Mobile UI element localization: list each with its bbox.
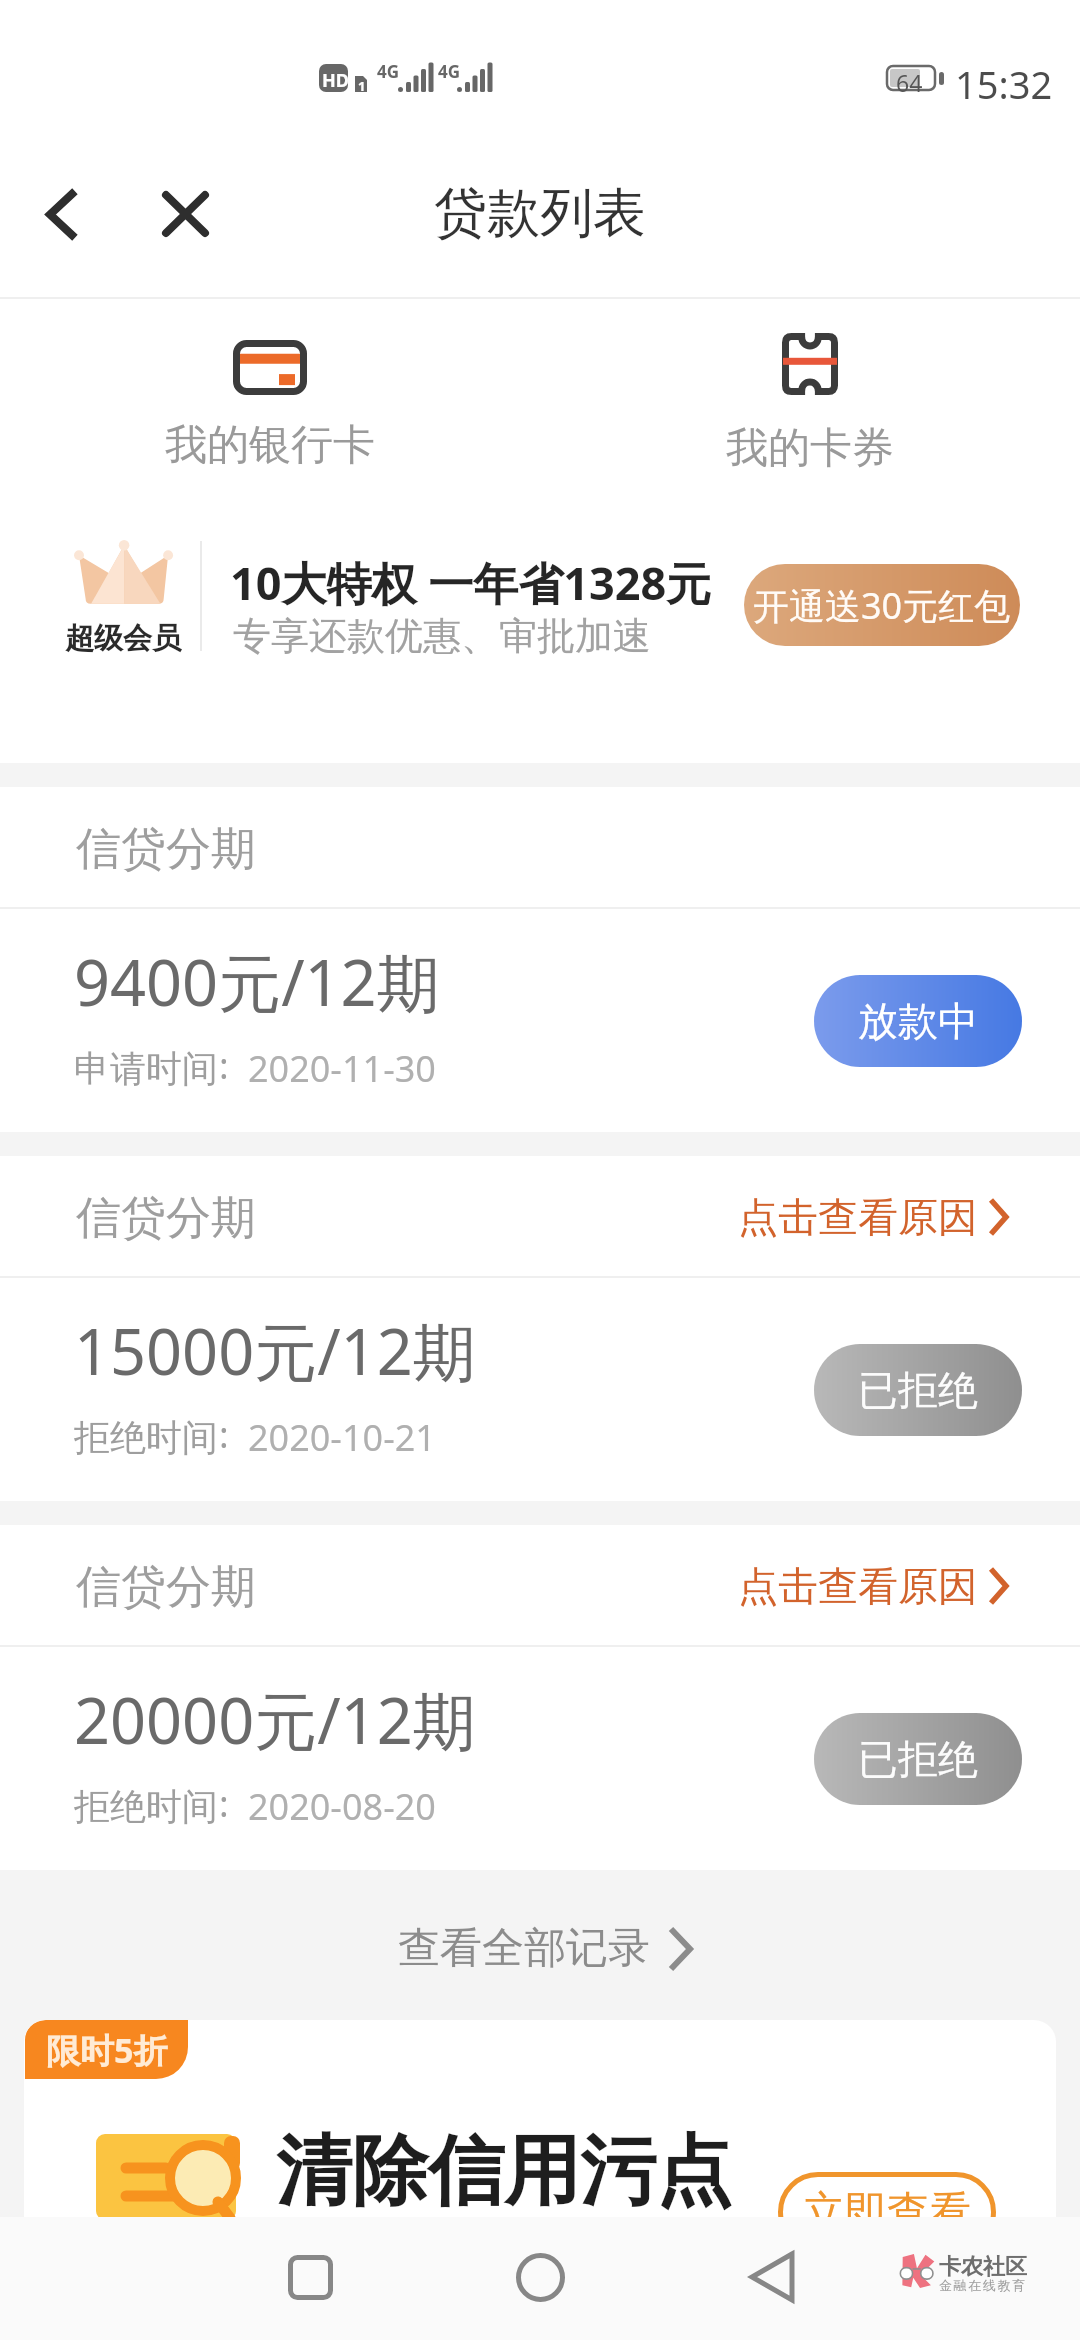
staticText: 我的银行卡 — [165, 419, 375, 472]
staticText: 超级会员 — [65, 620, 181, 657]
staticText: 15000元/12期 — [74, 1308, 476, 1394]
button[interactable]: 20000元/12期 — [0, 1647, 1080, 1870]
staticText: 2020-08-20 — [248, 1782, 436, 1831]
button[interactable]: 15000元/12期 — [0, 1278, 1080, 1501]
staticText: 拒绝时间 — [74, 1784, 218, 1829]
staticText: 2020-10-21 — [248, 1413, 436, 1462]
staticText: 点击查看原因 — [738, 1561, 978, 1611]
staticText: 信贷分期 — [76, 821, 256, 878]
staticText: 贷款列表 — [434, 180, 646, 247]
staticText: 专享还款优惠、审批加速 — [233, 612, 651, 660]
button[interactable]: 主页 — [480, 2230, 600, 2324]
button[interactable]: 返回 — [11, 164, 111, 264]
button[interactable]: 已拒绝 — [814, 1713, 1022, 1805]
staticText: 清除信用污点 — [276, 2124, 732, 2220]
button[interactable]: 信贷分期 — [0, 1525, 1080, 1645]
button[interactable]: 开通送30元红包 — [744, 564, 1020, 646]
button[interactable]: 放款中 — [814, 975, 1022, 1067]
button[interactable]: 关闭 — [135, 164, 235, 264]
staticText: 9400元/12期 — [74, 939, 440, 1025]
staticText: 10大特权 一年省1328元 — [230, 552, 712, 613]
staticText: 拒绝时间 — [74, 1415, 218, 1460]
staticText: 限时5折 — [46, 2027, 168, 2073]
staticText: : — [219, 1779, 229, 1828]
button[interactable]: 返回 — [712, 2230, 832, 2324]
button[interactable]: 超级会员 — [0, 499, 1080, 763]
staticText: 查看全部记录 — [398, 1922, 650, 1975]
staticText: 信贷分期 — [76, 1559, 256, 1616]
staticText: 已拒绝 — [858, 1734, 978, 1784]
staticText: 申请时间 — [74, 1046, 218, 1091]
staticText: 64 — [896, 67, 923, 98]
staticText: 开通送30元红包 — [753, 581, 1011, 630]
button[interactable]: 信贷分期 — [0, 1156, 1080, 1276]
button[interactable]: 信贷分期 — [0, 787, 1080, 907]
button[interactable]: 我的银行卡 — [0, 299, 540, 499]
staticText: 15:32 — [955, 58, 1053, 110]
staticText: 我的卡券 — [726, 422, 894, 475]
staticText: 放款中 — [858, 996, 978, 1046]
button[interactable]: 9400元/12期 — [0, 909, 1080, 1132]
staticText: 2020-11-30 — [248, 1044, 436, 1093]
staticText: 1 — [358, 77, 366, 95]
staticText: 4G — [377, 60, 400, 83]
staticText: : — [219, 1410, 229, 1459]
staticText: 立即查看 — [803, 2186, 971, 2220]
button[interactable]: 我的卡券 — [540, 299, 1080, 499]
staticText: 金融在线教育 — [939, 2277, 1027, 2293]
staticText: 已拒绝 — [858, 1365, 978, 1415]
staticText: 4G — [438, 60, 461, 83]
button[interactable]: 查看全部记录 — [6, 1873, 1080, 2023]
staticText: : — [219, 1041, 229, 1090]
button[interactable]: 立即查看 — [778, 2172, 996, 2220]
button[interactable]: 限时5折 — [24, 2020, 1056, 2220]
staticText: 信贷分期 — [76, 1190, 256, 1247]
staticText: 卡农社区 — [939, 2253, 1027, 2281]
button[interactable]: 已拒绝 — [814, 1344, 1022, 1436]
staticText: HD — [322, 68, 349, 93]
staticText: 20000元/12期 — [74, 1677, 476, 1763]
button[interactable]: 最近任务 — [250, 2230, 370, 2324]
staticText: 点击查看原因 — [738, 1192, 978, 1242]
